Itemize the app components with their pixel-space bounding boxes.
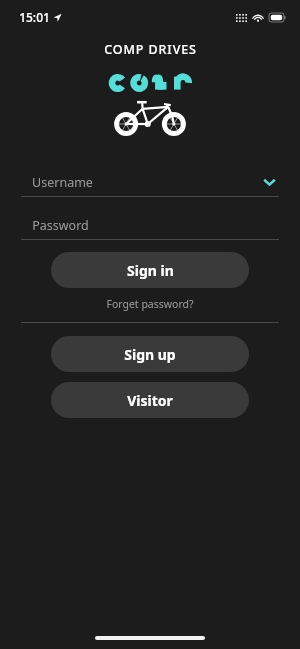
staticText: Username <box>32 174 93 191</box>
staticText: Sign in <box>127 261 174 280</box>
staticText: Forget password? <box>106 297 194 311</box>
button[interactable]: Username <box>21 168 279 197</box>
button[interactable]: Sign up <box>51 336 249 372</box>
button[interactable]: Forget password? <box>0 294 300 314</box>
button[interactable]: Password <box>21 211 279 240</box>
staticText: Password <box>32 217 89 234</box>
button[interactable]: Visitor <box>51 382 249 418</box>
staticText: Sign up <box>124 345 176 364</box>
button[interactable]: Sign in <box>51 252 249 288</box>
staticText: COMP DRIVES <box>104 41 197 58</box>
staticText: 15:01 <box>19 9 50 25</box>
staticText: Visitor <box>127 391 173 410</box>
other: Show saved usernames <box>263 178 276 186</box>
